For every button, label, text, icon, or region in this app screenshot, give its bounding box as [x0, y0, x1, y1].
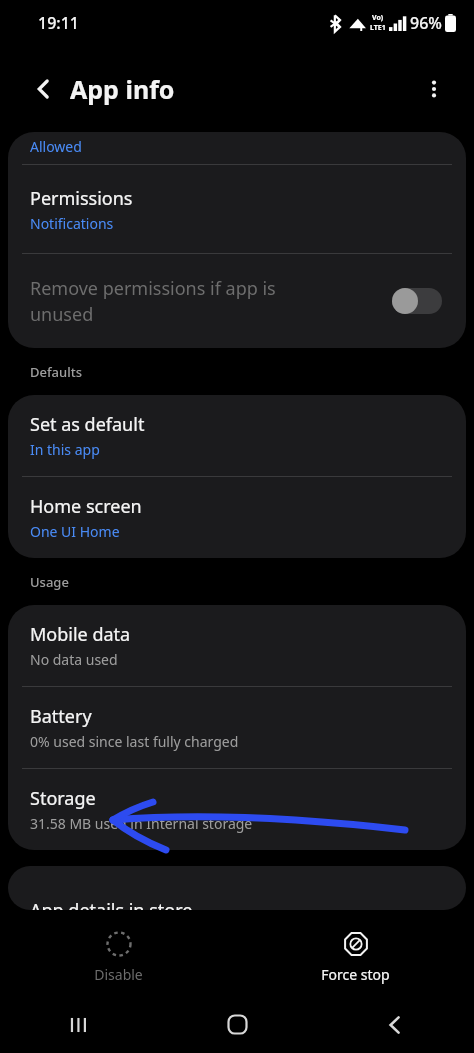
staticText: Allowed: [30, 137, 82, 156]
staticText: Mobile data: [30, 622, 131, 647]
staticText: LTE1: [370, 23, 386, 33]
button[interactable]: Home: [158, 996, 316, 1053]
staticText: Vo): [372, 13, 384, 23]
staticText: App details in store: [30, 898, 193, 910]
staticText: 31.58 MB used in Internal storage: [30, 814, 253, 833]
staticText: Battery: [30, 704, 92, 729]
staticText: Home screen: [30, 494, 142, 519]
staticText: Defaults: [30, 363, 83, 381]
staticText: 19:11: [38, 12, 79, 34]
staticText: Permissions: [30, 186, 133, 211]
button[interactable]: Back: [316, 996, 474, 1053]
button[interactable]: Back: [22, 67, 66, 111]
staticText: Force stop: [321, 965, 390, 984]
button[interactable]: Mobile data: [8, 605, 466, 686]
staticText: 96%: [410, 12, 442, 34]
staticText: 0% used since last fully charged: [30, 732, 239, 751]
button[interactable]: Permissions: [8, 165, 466, 253]
staticText: No data used: [30, 650, 118, 669]
staticText: Disable: [94, 965, 143, 984]
button[interactable]: Set as default: [8, 395, 466, 476]
staticText: Set as default: [30, 412, 145, 437]
staticText: unused: [30, 302, 94, 327]
staticText: In this app: [30, 440, 100, 459]
button[interactable]: Battery: [8, 687, 466, 768]
button[interactable]: Allowed: [8, 132, 466, 164]
staticText: Usage: [30, 573, 69, 591]
button[interactable]: Remove permissions toggle: [392, 287, 444, 315]
button[interactable]: Force stop: [237, 931, 474, 984]
button[interactable]: Disable: [0, 931, 237, 984]
button[interactable]: Home screen: [8, 477, 466, 558]
staticText: One UI Home: [30, 522, 120, 541]
button[interactable]: More options: [412, 67, 456, 111]
staticText: App info: [70, 72, 175, 106]
button[interactable]: Remove permissions if app is: [8, 254, 466, 348]
staticText: Remove permissions if app is: [30, 276, 276, 301]
staticText: Notifications: [30, 214, 114, 233]
button[interactable]: Recent apps: [0, 996, 158, 1053]
button[interactable]: App details in store: [8, 866, 466, 910]
staticText: Storage: [30, 786, 96, 811]
button[interactable]: Storage: [8, 769, 466, 850]
